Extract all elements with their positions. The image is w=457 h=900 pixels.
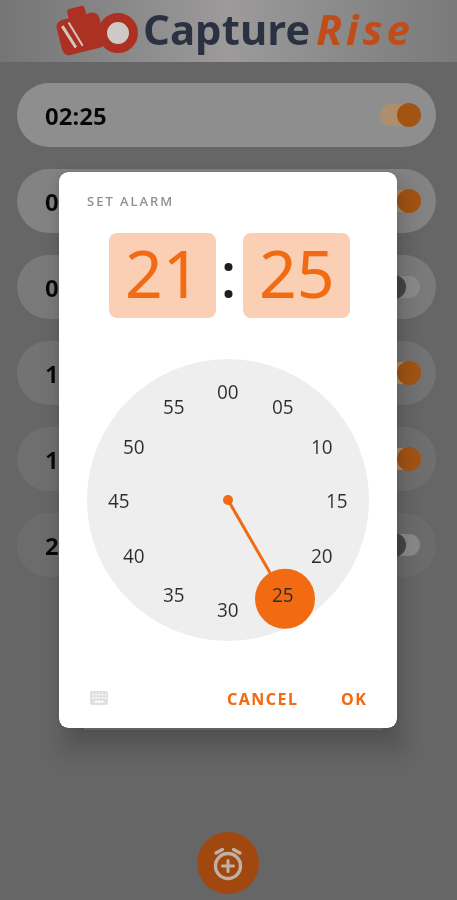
staticText: 20 [311,543,333,567]
staticText: Rise [316,0,414,57]
staticText: 45 [108,488,130,512]
staticText: OK [341,688,368,710]
staticText: 55 [163,394,185,418]
staticText: 21 [125,227,201,312]
staticText: SET ALARM [87,192,175,210]
button[interactable]: OK [329,684,379,714]
button[interactable] [378,188,422,214]
staticText: 05 [272,394,294,418]
staticText: 08:15 [45,271,107,304]
staticText: CANCEL [227,688,299,710]
staticText: 25 [272,582,294,606]
button[interactable] [378,274,422,300]
button[interactable]: 16:05 [17,427,436,491]
staticText: 04:30 [45,185,107,218]
button[interactable] [378,102,422,128]
staticText: 15 [326,488,348,512]
button[interactable] [378,446,422,472]
staticText: 12:40 [45,357,107,390]
staticText: 25 [259,227,335,312]
button[interactable]: 08:15 [17,255,436,319]
button[interactable] [378,532,422,558]
staticText: 00 [217,379,239,403]
button[interactable] [197,832,259,894]
staticText: Capture [143,0,311,57]
staticText: 10 [311,434,333,458]
staticText: 16:05 [45,443,107,476]
staticText: 50 [123,434,145,458]
button[interactable] [378,360,422,386]
staticText: 35 [163,582,185,606]
button[interactable]: CANCEL [219,684,307,714]
button[interactable]: 04:30 [17,169,436,233]
button[interactable]: 12:40 [17,341,436,405]
staticText: 40 [123,543,145,567]
staticText: 02:25 [45,99,107,132]
button[interactable]: 02:25 [17,83,436,147]
button[interactable]: 21:25 [17,513,436,577]
staticText: 21:25 [45,529,107,562]
staticText: 30 [217,597,239,621]
